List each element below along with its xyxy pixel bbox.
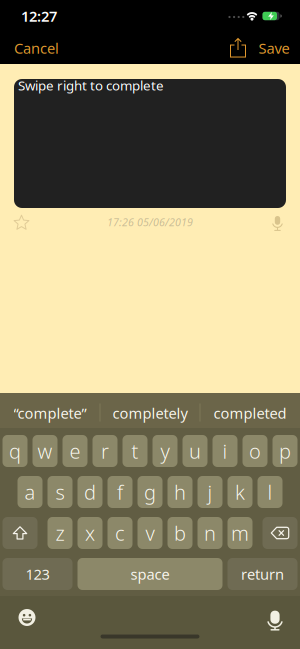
- button[interactable]: u: [182, 435, 207, 467]
- button[interactable]: p: [272, 435, 297, 467]
- staticText: Cancel: [14, 38, 59, 58]
- staticText: h: [174, 479, 186, 505]
- button[interactable]: d: [77, 476, 102, 508]
- button[interactable]: space: [77, 558, 222, 590]
- staticText: “complete”: [13, 403, 86, 423]
- button[interactable]: s: [47, 476, 72, 508]
- staticText: c: [115, 520, 125, 546]
- button[interactable]: g: [137, 476, 162, 508]
- staticText: f: [117, 479, 123, 505]
- staticText: m: [231, 520, 249, 546]
- button[interactable]: Dictate: [270, 213, 284, 232]
- staticText: 17:26 05/06/2019: [107, 215, 193, 229]
- button[interactable]: z: [47, 517, 72, 549]
- staticText: 12:27: [21, 6, 57, 26]
- button[interactable]: n: [197, 517, 222, 549]
- staticText: p: [279, 438, 291, 464]
- staticText: t: [131, 438, 138, 464]
- button[interactable]: j: [197, 476, 222, 508]
- button[interactable]: Save: [258, 38, 289, 58]
- staticText: n: [204, 520, 216, 546]
- button[interactable]: Emoji: [18, 609, 35, 626]
- staticText: completed: [213, 403, 286, 423]
- staticText: j: [207, 479, 212, 505]
- staticText: q: [9, 438, 21, 464]
- button[interactable]: a: [17, 476, 42, 508]
- staticText: l: [267, 479, 272, 505]
- staticText: v: [145, 520, 154, 546]
- button[interactable]: b: [167, 517, 192, 549]
- staticText: completely: [112, 403, 187, 423]
- staticText: d: [84, 479, 96, 505]
- staticText: y: [160, 438, 169, 464]
- staticText: s: [55, 479, 64, 505]
- button[interactable]: “complete”: [1, 396, 99, 430]
- button[interactable]: h: [167, 476, 192, 508]
- staticText: b: [174, 520, 186, 546]
- staticText: z: [55, 520, 64, 546]
- button[interactable]: r: [92, 435, 117, 467]
- button[interactable]: completely: [101, 396, 199, 430]
- button[interactable]: f: [107, 476, 132, 508]
- staticText: g: [144, 479, 156, 505]
- staticText: Swipe right to complete: [18, 76, 164, 94]
- button[interactable]: return: [227, 558, 297, 590]
- button[interactable]: e: [62, 435, 87, 467]
- staticText: o: [249, 438, 261, 464]
- button[interactable]: t: [122, 435, 147, 467]
- staticText: k: [235, 479, 245, 505]
- staticText: w: [37, 438, 52, 464]
- staticText: 123: [25, 564, 49, 584]
- button[interactable]: Favorite: [13, 214, 29, 231]
- button[interactable]: Share: [229, 37, 247, 58]
- button[interactable]: o: [242, 435, 267, 467]
- button[interactable]: i: [212, 435, 237, 467]
- staticText: r: [101, 438, 109, 464]
- button[interactable]: c: [107, 517, 132, 549]
- button[interactable]: Shift: [2, 517, 37, 549]
- staticText: e: [69, 438, 80, 464]
- staticText: return: [241, 564, 284, 584]
- button[interactable]: w: [32, 435, 57, 467]
- staticText: Save: [258, 38, 289, 58]
- staticText: u: [189, 438, 201, 464]
- button[interactable]: Dictate: [265, 610, 285, 631]
- staticText: a: [24, 479, 35, 505]
- button[interactable]: 123: [2, 558, 72, 590]
- button[interactable]: y: [152, 435, 177, 467]
- staticText: space: [130, 564, 169, 584]
- button[interactable]: k: [227, 476, 252, 508]
- button[interactable]: v: [137, 517, 162, 549]
- button[interactable]: Delete: [262, 517, 297, 549]
- staticText: x: [85, 520, 95, 546]
- button[interactable]: x: [77, 517, 102, 549]
- button[interactable]: m: [227, 517, 252, 549]
- button[interactable]: l: [257, 476, 282, 508]
- button[interactable]: completed: [201, 396, 299, 430]
- staticText: i: [222, 438, 227, 464]
- button[interactable]: Cancel: [14, 38, 59, 58]
- button[interactable]: q: [2, 435, 27, 467]
